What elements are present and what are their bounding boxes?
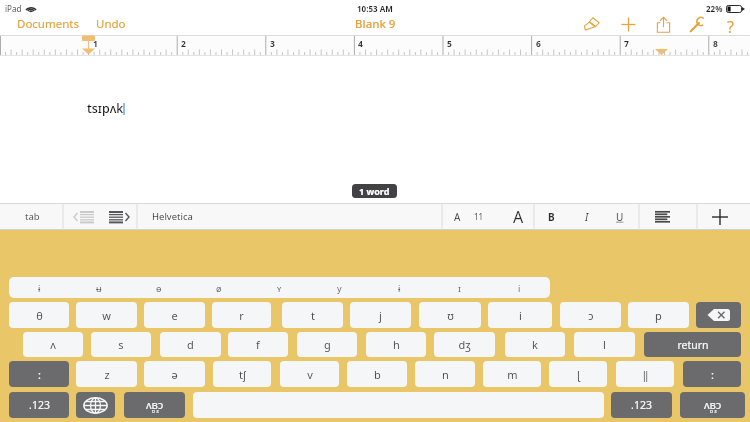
staticText: h [393,337,400,352]
staticText: i [518,282,521,294]
button[interactable]: Tools [681,13,713,35]
button[interactable]: ʊ [419,302,481,328]
staticText: ɵ [156,282,162,294]
button[interactable]: Documents [12,13,84,35]
staticText: t [311,308,315,323]
button[interactable]: Insert [612,13,644,35]
staticText: 2 [181,38,186,50]
staticText: : [38,367,41,382]
button[interactable]: Decrease font size [446,203,468,230]
button[interactable]: Change keyboard [76,392,115,418]
button[interactable]: Helvetica [140,203,260,230]
button[interactable]: j [350,302,411,328]
button[interactable]: θ [9,302,69,328]
button[interactable]: ɵ [129,277,189,298]
button[interactable]: Undo [91,13,131,35]
button[interactable]: ɔ [560,302,621,328]
button[interactable]: ‖ [616,361,674,387]
staticText: Documents [17,16,79,32]
button[interactable]: ɪ [429,277,489,298]
button[interactable]: ʌ [23,332,83,357]
button[interactable]: tab [12,203,52,230]
staticText: return [677,338,709,352]
button[interactable]: d [160,332,221,357]
button[interactable]: Insert object [706,203,734,230]
button[interactable]: h [366,332,426,357]
button[interactable]: y [309,277,369,298]
staticText: y [337,282,342,294]
button[interactable]: Help [714,13,746,35]
staticText: 3 [270,38,275,50]
staticText: dʒ [458,337,471,352]
button[interactable]: Space [193,392,604,418]
button[interactable]: w [76,302,137,328]
button[interactable]: t [282,302,343,328]
staticText: z [104,367,110,382]
button[interactable]: tʃ [213,361,271,387]
button[interactable]: v [280,361,339,387]
button[interactable]: Alignment [648,203,676,230]
button[interactable]: I [575,203,599,230]
button[interactable]: Increase font size [504,203,532,230]
button[interactable]: : [9,361,69,387]
staticText: ɨ [38,282,41,294]
button[interactable]: f [228,332,288,357]
button[interactable]: : [683,361,741,387]
button[interactable]: i [488,302,552,328]
button[interactable]: Delete [696,302,741,328]
button[interactable]: ʌʙɔ [680,392,745,418]
staticText: m [507,367,518,382]
button[interactable]: r [212,302,271,328]
staticText: ʌʙɔ [704,397,722,412]
button[interactable]: 11 [468,203,490,230]
button[interactable]: n [415,361,475,387]
staticText: .123 [631,398,652,412]
button[interactable]: b [347,361,407,387]
button[interactable]: p [628,302,689,328]
staticText: ʏ [277,282,282,294]
button[interactable]: ə [144,361,205,387]
button[interactable]: e [144,302,205,328]
staticText: ʉ [96,282,102,294]
staticText: p [655,308,662,323]
staticText: I [585,210,589,224]
staticText: ø [216,282,222,294]
button[interactable]: B [539,203,563,230]
staticText: l [603,337,606,352]
button[interactable]: ʏ [249,277,309,298]
button[interactable]: z [76,361,137,387]
staticText: r [239,308,244,323]
button[interactable]: Share [647,13,679,35]
button[interactable]: g [297,332,357,357]
button[interactable]: ʉ [69,277,129,298]
button[interactable]: Increase indent [102,203,136,230]
button[interactable]: U [608,203,632,230]
staticText: .123 [29,398,50,412]
staticText: ? [727,16,734,33]
button[interactable]: Decrease indent [68,203,100,230]
staticText: f [256,337,260,352]
button[interactable]: Brush [575,13,607,35]
button[interactable]: return [644,332,741,357]
button[interactable]: l [574,332,635,357]
staticText: w [102,308,111,323]
button[interactable]: m [483,361,541,387]
staticText: Blank 9 [355,16,396,32]
button[interactable]: .123 [611,392,672,418]
staticText: tʃ [239,367,246,382]
button[interactable]: ʌʙɔ [124,392,185,418]
button[interactable]: k [505,332,565,357]
button[interactable]: dʒ [434,332,495,357]
staticText: ɒ ɛ [710,408,717,415]
button[interactable]: ø [189,277,249,298]
button[interactable]: i [489,277,549,298]
staticText: iPad [5,3,22,14]
staticText: ɒ ɛ [152,408,159,415]
button[interactable]: 1 word [352,184,397,198]
button[interactable]: ɨ [9,277,69,298]
button[interactable]: s [91,332,151,357]
staticText: ʌʙɔ [146,397,164,412]
button[interactable]: .123 [9,392,69,418]
button[interactable]: ɨ [369,277,429,298]
button[interactable]: ɭ [549,361,607,387]
